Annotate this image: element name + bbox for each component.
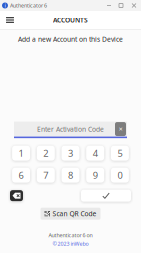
button[interactable]: 2: [37, 146, 55, 161]
button[interactable]: 7: [37, 168, 55, 183]
button[interactable]: 9: [86, 168, 104, 183]
button[interactable]: Clear: [115, 122, 126, 136]
staticText: 6: [19, 169, 24, 181]
staticText: ✕: [118, 126, 122, 132]
staticText: ACCOUNTS: [53, 16, 88, 24]
button[interactable]: 3: [61, 146, 79, 161]
staticText: 1: [19, 147, 24, 159]
staticText: Authenticator 6: [10, 2, 47, 9]
button[interactable]: 8: [61, 168, 79, 183]
button[interactable]: Close: [127, 0, 141, 11]
button[interactable]: 6: [12, 168, 30, 183]
staticText: 7: [43, 169, 48, 181]
button[interactable]: 4: [86, 146, 104, 161]
staticText: 0: [117, 169, 122, 181]
button[interactable]: Minimize: [103, 0, 115, 11]
button[interactable]: Maximize: [115, 0, 127, 11]
staticText: Authenticator 6 on: [48, 232, 92, 239]
button[interactable]: 0: [111, 168, 129, 183]
button[interactable]: 1: [12, 146, 30, 161]
staticText: 9: [93, 169, 98, 181]
button[interactable]: 5: [111, 146, 129, 161]
staticText: © 2023 inWebo: [52, 240, 88, 247]
staticText: i: [4, 2, 5, 9]
button[interactable]: Backspace: [10, 190, 23, 201]
staticText: 8: [68, 169, 73, 181]
staticText: Enter Activation Code: [37, 125, 104, 133]
staticText: 3: [68, 147, 73, 159]
staticText: 5: [117, 147, 122, 159]
button[interactable]: Scan QR Code: [40, 208, 100, 220]
staticText: 4: [93, 147, 98, 159]
staticText: 2: [43, 147, 48, 159]
staticText: Scan QR Code: [52, 209, 96, 218]
button[interactable]: Menu: [2, 11, 18, 29]
staticText: Add a new Account on this Device: [18, 35, 123, 44]
button[interactable]: Confirm: [81, 190, 131, 202]
